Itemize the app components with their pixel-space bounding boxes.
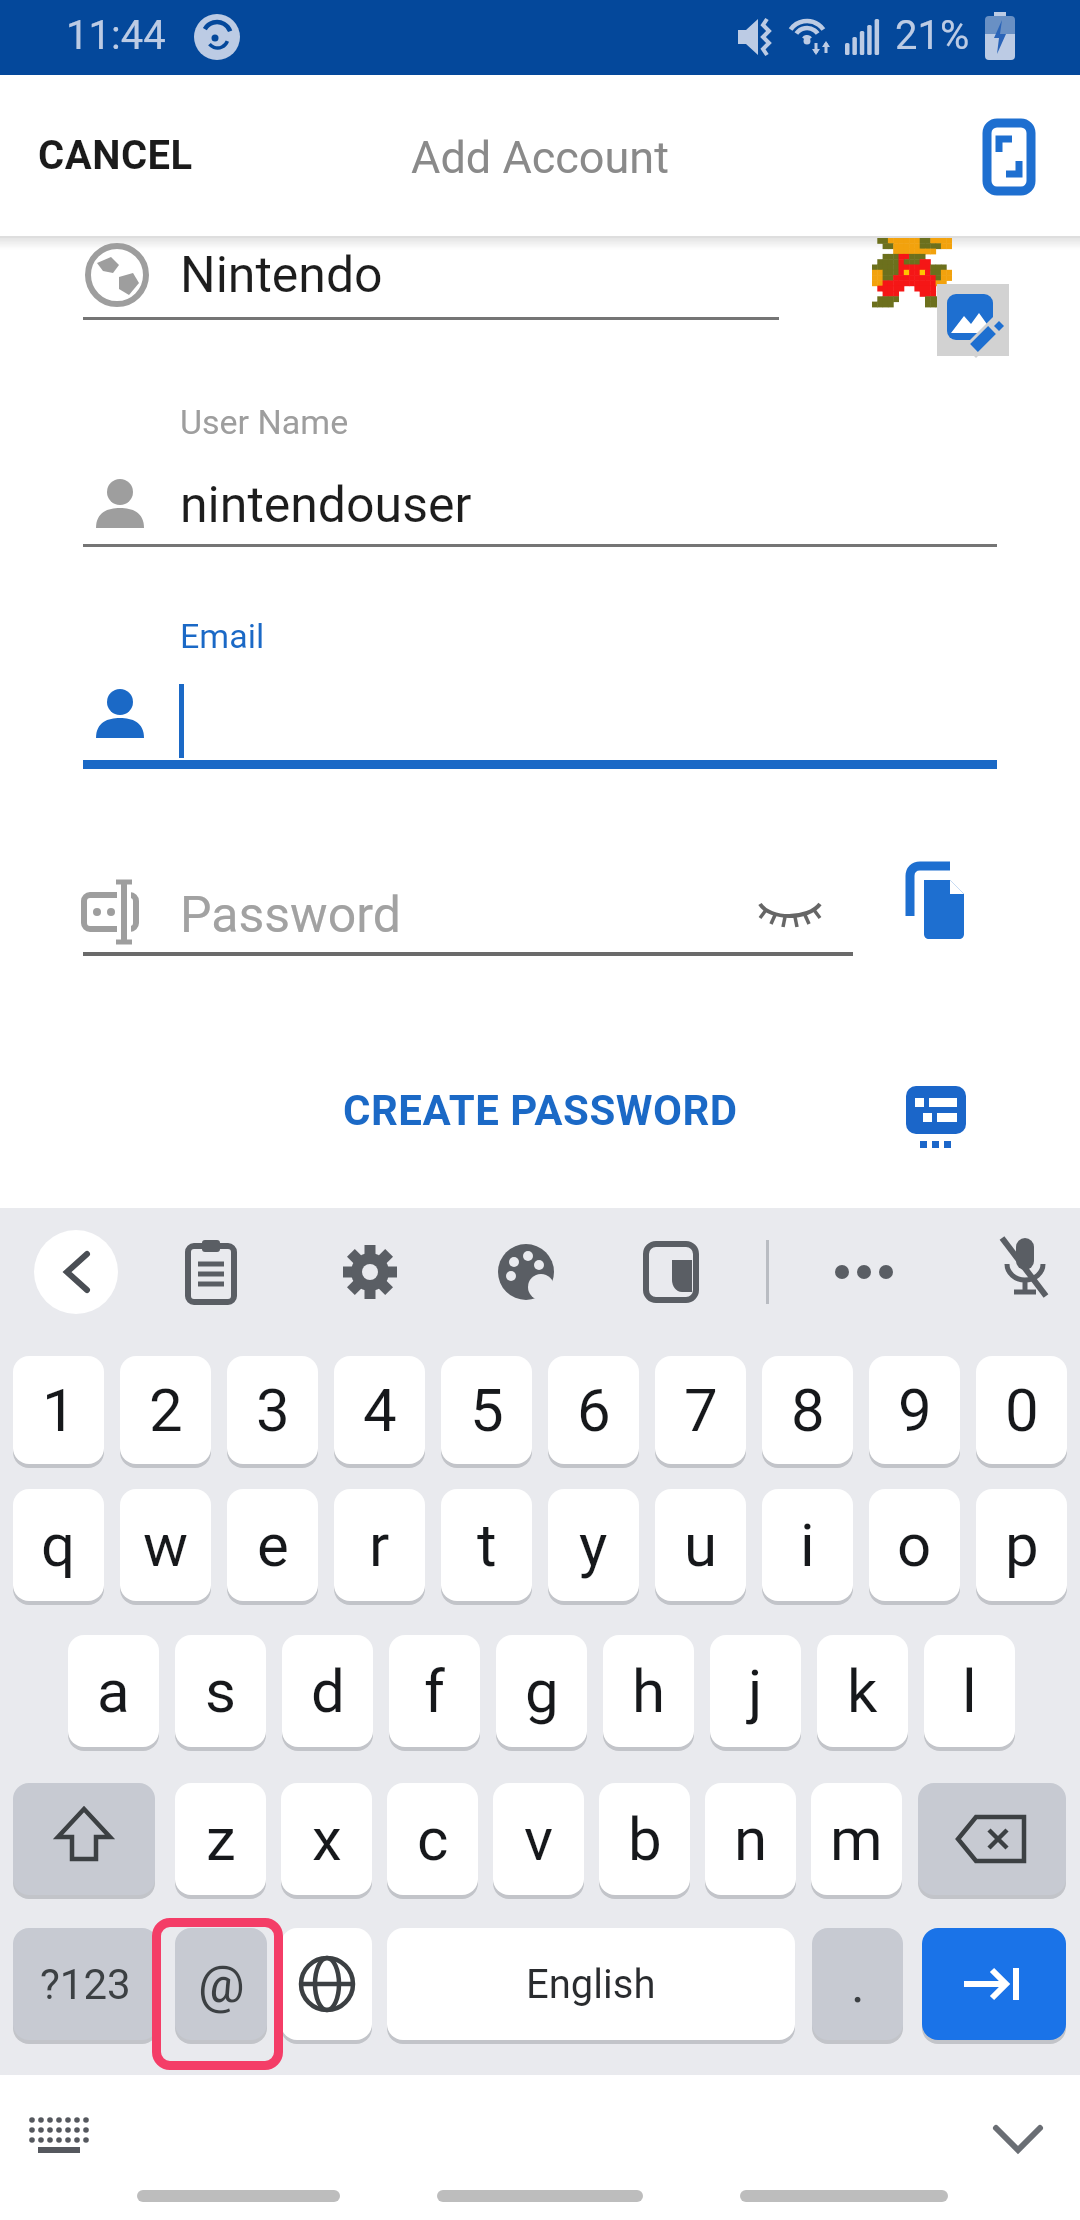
button[interactable] — [888, 852, 984, 948]
button[interactable]: m — [811, 1783, 902, 1895]
staticText: c — [417, 1804, 449, 1874]
button[interactable]: p — [976, 1489, 1067, 1601]
button[interactable] — [338, 1240, 402, 1304]
staticText: 0 — [1005, 1375, 1039, 1445]
button[interactable] — [980, 2110, 1056, 2170]
staticText: l — [962, 1656, 977, 1726]
button[interactable]: f — [389, 1635, 480, 1747]
staticText: u — [684, 1510, 718, 1580]
staticText: 21% — [895, 12, 970, 59]
button[interactable] — [180, 1240, 244, 1304]
staticText: CREATE PASSWORD — [343, 1086, 738, 1135]
button[interactable]: 7 — [655, 1356, 746, 1464]
button[interactable]: k — [817, 1635, 908, 1747]
button[interactable]: 4 — [334, 1356, 425, 1464]
staticText: 7 — [684, 1375, 718, 1445]
button[interactable]: l — [924, 1635, 1015, 1747]
staticText: nintendouser — [180, 476, 472, 535]
button[interactable]: ?123 — [13, 1928, 158, 2040]
button[interactable]: 0 — [976, 1356, 1067, 1464]
staticText: h — [632, 1656, 666, 1726]
staticText: 8 — [791, 1375, 825, 1445]
button[interactable] — [994, 1236, 1054, 1308]
button[interactable]: English — [387, 1928, 795, 2040]
staticText: a — [97, 1656, 130, 1726]
staticText: Password — [180, 886, 401, 945]
button[interactable]: j — [710, 1635, 801, 1747]
staticText: @ — [198, 1954, 245, 2015]
staticText: 6 — [577, 1375, 611, 1445]
button[interactable]: n — [705, 1783, 796, 1895]
button[interactable]: h — [603, 1635, 694, 1747]
staticText: p — [1005, 1510, 1039, 1580]
staticText: 3 — [256, 1375, 290, 1445]
button[interactable]: @ — [175, 1928, 267, 2040]
button[interactable]: CANCEL — [20, 115, 220, 195]
button[interactable]: b — [599, 1783, 690, 1895]
staticText: 2 — [149, 1375, 183, 1445]
button[interactable]: 2 — [120, 1356, 211, 1464]
staticText: m — [830, 1804, 883, 1874]
staticText: z — [206, 1804, 236, 1874]
button[interactable]: u — [655, 1489, 746, 1601]
button[interactable]: x — [281, 1783, 372, 1895]
button[interactable] — [642, 1240, 706, 1304]
staticText: English — [526, 1961, 656, 2008]
button[interactable]: a — [68, 1635, 159, 1747]
button[interactable]: 6 — [548, 1356, 639, 1464]
button[interactable]: y — [548, 1489, 639, 1601]
button[interactable]: t — [441, 1489, 532, 1601]
button[interactable]: g — [496, 1635, 587, 1747]
staticText: Add Account — [0, 131, 1080, 221]
button[interactable]: . — [812, 1928, 903, 2040]
staticText: 11:44 — [66, 12, 166, 59]
button[interactable]: 5 — [441, 1356, 532, 1464]
staticText: b — [628, 1804, 662, 1874]
button[interactable]: q — [13, 1489, 104, 1601]
button[interactable] — [494, 1240, 558, 1304]
staticText: 4 — [363, 1375, 397, 1445]
button[interactable]: c — [387, 1783, 478, 1895]
staticText: q — [41, 1510, 76, 1580]
staticText: y — [579, 1510, 608, 1580]
staticText: n — [734, 1804, 768, 1874]
button[interactable]: z — [175, 1783, 266, 1895]
staticText: User Name — [180, 402, 349, 442]
button[interactable] — [918, 1783, 1066, 1895]
button[interactable]: 3 — [227, 1356, 318, 1464]
button[interactable] — [34, 1230, 118, 1314]
button[interactable]: 1 — [13, 1356, 104, 1464]
button[interactable]: 8 — [762, 1356, 853, 1464]
button[interactable] — [13, 1783, 155, 1895]
button[interactable]: i — [762, 1489, 853, 1601]
staticText: i — [800, 1510, 815, 1580]
button[interactable]: o — [869, 1489, 960, 1601]
staticText: 1 — [42, 1375, 76, 1445]
button[interactable] — [966, 106, 1066, 206]
staticText: CANCEL — [38, 132, 193, 179]
button[interactable]: r — [334, 1489, 425, 1601]
button[interactable] — [281, 1928, 372, 2040]
button[interactable]: d — [282, 1635, 373, 1747]
staticText: k — [847, 1656, 878, 1726]
button[interactable]: w — [120, 1489, 211, 1601]
staticText: d — [311, 1656, 345, 1726]
staticText: x — [312, 1804, 342, 1874]
staticText: ?123 — [40, 1960, 131, 2009]
button[interactable] — [24, 2110, 100, 2176]
button[interactable]: v — [493, 1783, 584, 1895]
button[interactable]: CREATE PASSWORD — [330, 1072, 750, 1148]
staticText: s — [205, 1656, 236, 1726]
button[interactable]: 9 — [869, 1356, 960, 1464]
staticText: v — [524, 1804, 554, 1874]
button[interactable] — [937, 284, 1009, 356]
button[interactable]: s — [175, 1635, 266, 1747]
staticText: o — [897, 1510, 932, 1580]
staticText: g — [525, 1656, 559, 1726]
staticText: w — [143, 1510, 189, 1580]
button[interactable] — [890, 1086, 982, 1178]
button[interactable]: e — [227, 1489, 318, 1601]
staticText: 5 — [470, 1375, 504, 1445]
button[interactable] — [922, 1928, 1066, 2040]
staticText: . — [851, 1954, 865, 2015]
